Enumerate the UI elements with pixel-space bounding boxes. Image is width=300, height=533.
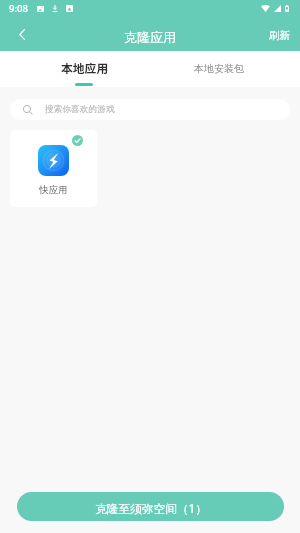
staticText: 搜索你喜欢的游戏 <box>45 104 115 115</box>
staticText: 克隆应用 <box>124 29 176 45</box>
staticText: 9:08 <box>9 2 28 15</box>
button[interactable]: 本地应用 <box>0 51 150 87</box>
staticText: 本地应用 <box>61 59 109 76</box>
staticText: 本地安装包 <box>194 62 244 75</box>
button[interactable]: 克隆至须弥空间（1） <box>17 492 284 521</box>
staticText: 刷新 <box>269 29 290 42</box>
button[interactable]: 快应用 <box>10 130 97 207</box>
button[interactable]: Back <box>5 17 39 51</box>
button[interactable]: 搜索你喜欢的游戏 <box>10 99 290 120</box>
staticText: 快应用 <box>39 184 68 196</box>
button[interactable]: 刷新 <box>259 21 300 51</box>
button[interactable]: 本地安装包 <box>150 51 300 87</box>
staticText: 克隆至须弥空间（1） <box>95 500 207 516</box>
